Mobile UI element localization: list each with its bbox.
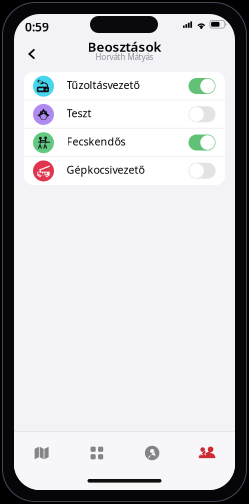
button[interactable]: Profile: [124, 437, 180, 469]
button[interactable]: Map: [14, 437, 69, 469]
button[interactable]: People: [180, 437, 235, 469]
staticText: Beosztások: [87, 38, 161, 55]
button[interactable]: Grid: [69, 437, 124, 469]
staticText: Tűzoltásvezető: [66, 78, 139, 92]
button[interactable]: Back: [18, 40, 46, 68]
button[interactable]: Fecskendős: [24, 128, 225, 157]
button[interactable]: Gépkocsivezető: [24, 157, 225, 185]
button[interactable]: Tűzoltásvezető: [24, 72, 225, 100]
staticText: Horváth Mátyás: [95, 52, 153, 62]
staticText: Gépkocsivezető: [66, 163, 144, 177]
button[interactable]: Teszt: [24, 100, 225, 128]
staticText: Teszt: [66, 106, 91, 120]
staticText: 0:59: [25, 19, 49, 35]
staticText: Fecskendős: [66, 134, 125, 148]
